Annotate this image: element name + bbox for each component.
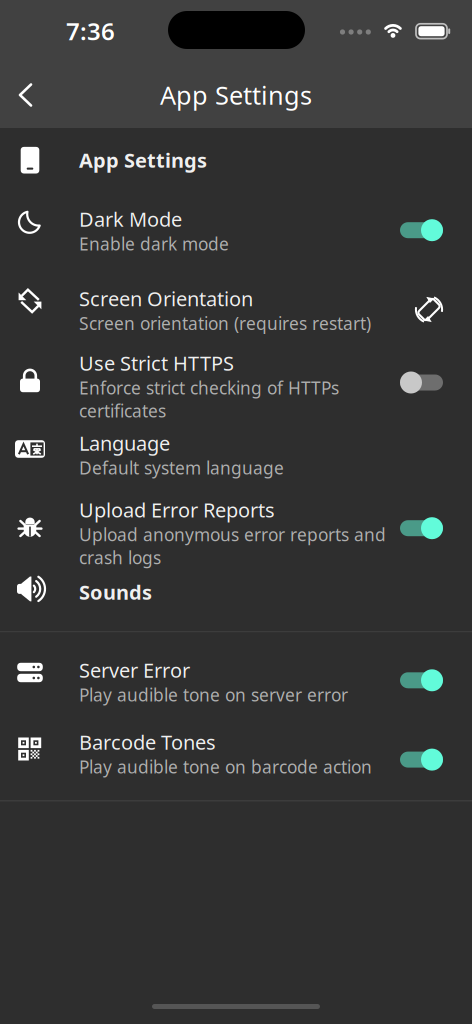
button[interactable]: Upload Error Reports (0, 489, 472, 572)
staticText: Dark Mode (79, 206, 182, 232)
staticText: Play audible tone on barcode action (79, 755, 372, 778)
staticText: Screen Orientation (79, 285, 253, 312)
staticText: Barcode Tones (79, 729, 216, 755)
staticText: Enforce strict checking of HTTPs certifi… (79, 376, 339, 422)
button[interactable]: Sounds (0, 572, 472, 631)
button[interactable]: Barcode Tones (0, 722, 472, 800)
staticText: App Settings (160, 78, 312, 112)
staticText: Screen orientation (requires restart) (79, 312, 371, 335)
staticText: 7:36 (66, 15, 115, 47)
button[interactable]: Use Strict HTTPS (0, 343, 472, 423)
staticText: Use Strict HTTPS (79, 350, 234, 376)
staticText: App Settings (79, 147, 207, 173)
staticText: Enable dark mode (79, 232, 229, 255)
staticText: Upload anonymous error reports and crash… (79, 523, 386, 569)
staticText: Sounds (79, 579, 152, 605)
staticText: Upload Error Reports (79, 496, 275, 523)
staticText: Server Error (79, 657, 190, 683)
button[interactable]: Server Error (0, 650, 472, 722)
button[interactable]: App Settings (0, 128, 472, 199)
button[interactable]: Screen Orientation (0, 278, 472, 343)
staticText: Play audible tone on server error (79, 683, 348, 706)
staticText: Language (79, 430, 170, 456)
staticText: Default system language (79, 456, 284, 479)
button[interactable]: Back (0, 66, 51, 123)
button[interactable]: Dark Mode (0, 199, 472, 278)
button[interactable]: Language (0, 423, 472, 489)
